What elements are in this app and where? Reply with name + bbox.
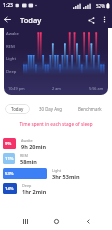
staticText: Benchmark [78,106,102,112]
staticText: 14% [5,186,14,192]
staticText: 11% [5,156,14,162]
staticText: 9h 20min [21,143,47,150]
staticText: 1:23 [3,2,13,9]
button[interactable]: Navigate up [0,12,15,27]
button[interactable]: 30 Day Avg [33,104,68,114]
staticText: Awake [6,31,19,37]
staticText: 9% [5,141,12,147]
staticText: REM [6,44,15,50]
button[interactable]: Benchmark [72,104,108,114]
button[interactable]: More options [98,13,111,26]
staticText: 5:56 am [89,86,104,91]
staticText: 30 Day Avg [39,106,62,112]
staticText: Light [52,168,62,173]
button[interactable]: 53% [3,168,109,183]
staticText: Today [11,106,24,112]
staticText: Light [6,56,16,62]
staticText: Deep [22,183,32,188]
button[interactable]: Recent apps [18,214,32,228]
button[interactable]: 11% [3,153,109,168]
button[interactable]: Back [81,214,95,228]
staticText: 2 am [52,86,61,91]
button[interactable]: Share [84,13,98,27]
button[interactable]: 14% [3,183,109,198]
staticText: Awake [21,138,33,143]
button[interactable]: 9% [3,138,109,153]
staticText: Time spent in each stage of sleep [0,121,112,127]
button[interactable]: Today [5,104,30,114]
staticText: 52% [96,3,105,9]
staticText: Deep [6,69,17,75]
staticText: 1hr 2min [22,188,47,195]
staticText: 53% [5,171,14,177]
staticText: 3hr 53min [52,173,80,180]
staticText: REM [20,153,28,158]
button[interactable]: Home [49,214,63,228]
staticText: 10:49 pm [8,86,25,91]
staticText: Today [20,15,42,25]
staticText: 58min [20,158,37,165]
